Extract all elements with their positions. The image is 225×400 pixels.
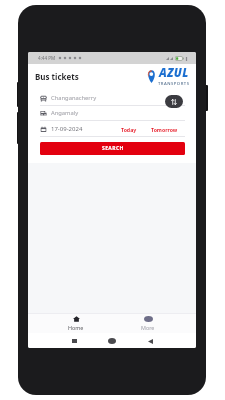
staticText: Changanacherry xyxy=(51,94,97,102)
button[interactable]: Home xyxy=(104,335,120,347)
button[interactable]: Changanacherry xyxy=(28,90,196,106)
staticText: AZUL xyxy=(159,65,189,81)
button[interactable]: Swap origin and destination xyxy=(165,95,183,108)
staticText: TRANSPORTS xyxy=(158,81,190,87)
button[interactable]: More xyxy=(114,313,182,333)
staticText: Today xyxy=(121,126,137,133)
button[interactable]: Home xyxy=(42,313,110,333)
button[interactable]: Recents xyxy=(66,335,82,347)
staticText: 4:44 PM xyxy=(38,55,56,61)
staticText: Tomorrow xyxy=(151,126,178,133)
button[interactable]: 17-09-2024 xyxy=(40,125,83,133)
staticText: SEARCH xyxy=(102,145,124,152)
staticText: More xyxy=(141,324,155,331)
staticText: Bus tickets xyxy=(35,71,79,82)
button[interactable]: SEARCH xyxy=(40,142,185,155)
button[interactable]: Angamaly xyxy=(28,105,196,121)
button[interactable]: Today xyxy=(120,126,138,133)
staticText: Angamaly xyxy=(51,109,79,117)
staticText: 17-09-2024 xyxy=(51,125,83,133)
button[interactable]: Tomorrow xyxy=(150,126,179,133)
staticText: Home xyxy=(68,324,84,331)
button[interactable]: Back xyxy=(142,335,158,347)
